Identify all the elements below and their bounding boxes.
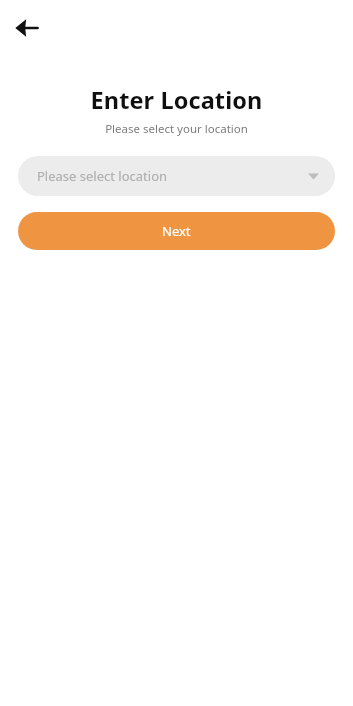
staticText: Please select location: [37, 167, 308, 185]
button[interactable]: Next: [18, 212, 335, 250]
button[interactable]: Please select location: [18, 156, 335, 196]
staticText: Enter Location: [0, 84, 353, 116]
staticText: Next: [162, 222, 191, 240]
button[interactable]: Back: [9, 10, 45, 46]
staticText: Please select your location: [0, 121, 353, 137]
